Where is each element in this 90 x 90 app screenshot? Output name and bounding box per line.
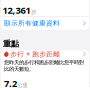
button[interactable]: 步行 + 跑步距離 — [1, 50, 89, 90]
button[interactable]: 顯示所有健康資料 — [1, 17, 89, 30]
staticText: 12,361 — [3, 4, 31, 16]
staticText: 7.2 — [4, 77, 17, 90]
staticText: 您昨天的步行和跑步距離比您平時對比的天數短。 — [4, 59, 84, 72]
staticText: 重點 — [3, 39, 19, 49]
button[interactable]: 12,361 — [1, 0, 89, 16]
staticText: 公里 — [18, 82, 28, 89]
staticText: 步 — [31, 9, 36, 15]
staticText: 步行 + 跑步距離 — [10, 49, 60, 58]
staticText: 顯示所有健康資料 — [4, 19, 60, 27]
